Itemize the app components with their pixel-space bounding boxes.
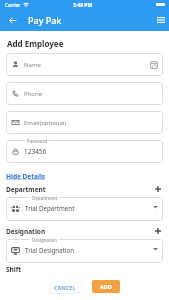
staticText: 123456 <box>24 147 47 156</box>
staticText: Carrier <box>5 2 21 8</box>
staticText: Designation <box>6 227 46 236</box>
button[interactable]: ADD <box>92 280 120 293</box>
button[interactable]: Add Designation <box>153 226 163 236</box>
staticText: Shift <box>6 265 22 274</box>
staticText: Email(optional) <box>24 119 67 127</box>
staticText: Phone <box>24 90 43 98</box>
button[interactable]: CANCEL <box>50 281 80 293</box>
staticText: Password <box>27 138 47 144</box>
staticText: Designation <box>32 237 57 243</box>
staticText: Hide Details <box>6 172 46 181</box>
staticText: Add Employee <box>7 38 64 49</box>
button[interactable]: Email(optional) <box>6 111 163 134</box>
staticText: Trial Designation <box>25 246 75 254</box>
button[interactable]: Trial Department <box>6 197 163 221</box>
button[interactable]: Add Department <box>153 184 163 194</box>
staticText: Pay Pak <box>28 14 62 26</box>
staticText: Department <box>32 195 58 201</box>
staticText: Trial Department <box>25 204 75 212</box>
button[interactable]: Phone <box>6 82 163 105</box>
button[interactable]: Trial Designation <box>6 239 163 263</box>
button[interactable]: 123456 <box>6 140 163 163</box>
button[interactable]: Name <box>6 53 163 76</box>
staticText: 3:48 PM <box>73 2 93 9</box>
staticText: Name <box>24 61 41 69</box>
button[interactable]: Hide Details <box>6 172 46 181</box>
button[interactable]: Menu <box>155 14 167 26</box>
staticText: CANCEL <box>54 284 76 291</box>
staticText: ADD <box>100 283 112 290</box>
staticText: Department <box>6 185 46 194</box>
button[interactable]: Back <box>6 14 19 27</box>
